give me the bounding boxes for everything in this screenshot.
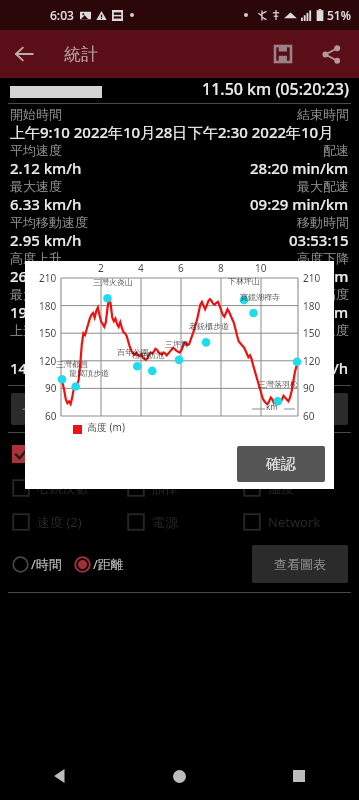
- staticText: 高度 (m): [87, 420, 125, 434]
- staticText: 心跳次數: [37, 480, 89, 496]
- button[interactable]: 一圈的距離 (1.00 KM): [11, 393, 161, 425]
- staticText: 最大速度: [10, 178, 62, 194]
- button[interactable]: 速度 (2): [12, 505, 127, 539]
- staticText: 三灣火炎山: [93, 277, 133, 287]
- staticText: 下降速度: [297, 322, 349, 338]
- staticText: 開始時間: [10, 106, 62, 122]
- staticText: 下林坪山: [228, 276, 260, 286]
- staticText: 6.33 km/h: [10, 194, 82, 214]
- staticText: 統計: [64, 44, 98, 65]
- button[interactable]: 心跳次數: [12, 471, 127, 505]
- staticText: 28:20 min/km: [250, 158, 349, 178]
- staticText: 確認: [266, 455, 296, 474]
- button[interactable]: Network: [243, 505, 359, 539]
- staticText: 180: [39, 299, 57, 313]
- button[interactable]: /距離: [74, 555, 128, 573]
- staticText: 51%: [327, 7, 351, 23]
- staticText: 150: [303, 326, 321, 340]
- staticText: 72 m: [313, 302, 349, 322]
- staticText: 韻律: [152, 480, 178, 496]
- staticText: 90: [303, 381, 315, 395]
- staticText: 120: [303, 354, 321, 368]
- staticText: 60: [303, 409, 315, 423]
- staticText: 最大配速: [297, 178, 349, 194]
- staticText: 高度上升: [10, 250, 62, 266]
- staticText: 180: [303, 299, 321, 313]
- button[interactable]: Home: [157, 754, 201, 798]
- staticText: 09:29 min/km: [250, 194, 349, 214]
- staticText: 170.08 m/h: [268, 358, 349, 378]
- staticText: /時間: [31, 555, 62, 573]
- staticText: 結束時間: [297, 106, 349, 122]
- button[interactable]: Back: [38, 754, 82, 798]
- staticText: 90: [45, 381, 57, 395]
- staticText: 144.90 m/h: [10, 358, 91, 378]
- button[interactable]: 電源: [127, 505, 243, 539]
- staticText: 移動時間: [297, 214, 349, 230]
- staticText: 平均速度: [10, 142, 62, 158]
- button[interactable]: /時間: [12, 555, 66, 573]
- staticText: 三灣都昌: [56, 359, 88, 369]
- button[interactable]: 速度: [127, 437, 243, 471]
- staticText: 配速: [323, 142, 349, 158]
- staticText: 6:03: [50, 7, 74, 23]
- staticText: 最大高度: [10, 286, 62, 302]
- staticText: 210: [303, 271, 321, 285]
- staticText: 最小高度: [297, 286, 349, 302]
- staticText: 2610 m: [10, 266, 63, 286]
- staticText: 150: [39, 326, 57, 340]
- staticText: 190 m: [10, 302, 54, 322]
- button[interactable]: 溫度: [243, 471, 359, 505]
- staticText: 120: [39, 354, 57, 368]
- staticText: 210: [39, 271, 57, 285]
- button[interactable]: 查看圖表: [252, 545, 348, 583]
- staticText: 8: [218, 261, 224, 275]
- staticText: 三坪埤: [165, 339, 189, 349]
- staticText: 4: [138, 261, 144, 275]
- staticText: 寶鏡湖禪寺: [240, 292, 280, 302]
- button[interactable]: 確認: [237, 446, 325, 482]
- staticText: 03:53:15: [289, 230, 349, 250]
- button[interactable]: 韻律: [127, 471, 243, 505]
- staticText: 龍窩頂步道: [69, 368, 109, 378]
- staticText: 11.50 km (05:20:23): [202, 78, 349, 98]
- staticText: 百年公園: [117, 347, 149, 357]
- staticText: Network: [268, 513, 321, 531]
- staticText: 查看圖表: [274, 556, 326, 572]
- staticText: 詳細: [294, 401, 320, 417]
- staticText: 上升速度: [10, 322, 62, 338]
- staticText: 溫度: [268, 480, 294, 496]
- button[interactable]: 詳細: [266, 393, 348, 425]
- button[interactable]: Back: [0, 30, 48, 78]
- staticText: 速度 (2): [37, 513, 82, 531]
- staticText: 三灣落羽松: [258, 379, 298, 389]
- staticText: 2.12 km/h: [10, 158, 82, 178]
- staticText: 老銃櫃步道: [189, 321, 229, 331]
- button[interactable]: Save: [259, 30, 307, 78]
- staticText: 下午2:30 2022年10月28日: [188, 122, 349, 142]
- button[interactable]: 高度: [12, 437, 127, 471]
- staticText: 2.95 km/h: [10, 230, 82, 250]
- staticText: 松柏防池: [132, 350, 164, 360]
- staticText: 2640 m: [296, 266, 349, 286]
- staticText: 坡度: [268, 446, 294, 462]
- staticText: 60: [45, 409, 57, 423]
- staticText: 平均移動速度: [10, 214, 88, 230]
- staticText: 電源: [152, 514, 178, 530]
- staticText: km: [266, 401, 278, 412]
- staticText: 6: [178, 261, 184, 275]
- button[interactable]: 坡度: [243, 437, 359, 471]
- staticText: 一圈的距離 (1.00 KM): [22, 400, 151, 418]
- staticText: 高度下降: [297, 250, 349, 266]
- staticText: 上午9:10 2022年10月28日: [10, 122, 188, 142]
- staticText: 10: [255, 261, 267, 275]
- button[interactable]: Share: [307, 30, 355, 78]
- staticText: /距離: [93, 555, 124, 573]
- staticText: 2: [98, 261, 104, 275]
- button[interactable]: Recents: [277, 754, 321, 798]
